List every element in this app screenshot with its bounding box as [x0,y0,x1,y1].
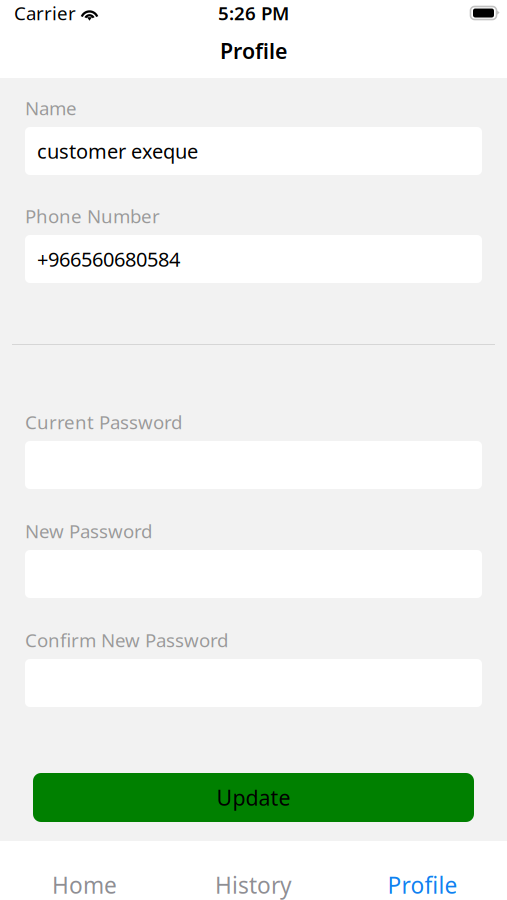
staticText: Profile [220,37,287,65]
button[interactable]: Profile [338,841,507,900]
staticText: Carrier [14,1,76,25]
staticText: Update [216,783,290,812]
staticText: Name [25,96,77,120]
staticText: New Password [25,519,152,543]
staticText: Current Password [25,410,182,434]
staticText: 5:26 PM [218,1,289,25]
button[interactable]: History [169,841,338,900]
staticText: Confirm New Password [25,628,228,652]
button[interactable]: Home [0,841,169,900]
staticText: Home [52,870,117,900]
staticText: History [215,870,292,900]
staticText: customer exeque [37,138,198,164]
button[interactable]: Update [33,773,474,822]
staticText: Profile [387,870,457,900]
staticText: +966560680584 [37,246,180,272]
staticText: Phone Number [25,204,160,228]
